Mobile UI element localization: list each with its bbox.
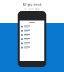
- button[interactable]: [20, 45, 44, 50]
- button[interactable]: [20, 41, 44, 45]
- button[interactable]: [20, 37, 44, 41]
- button[interactable]: [20, 29, 44, 33]
- button[interactable]: [20, 24, 44, 29]
- staticText: All you need: [22, 3, 41, 6]
- staticText: in one app: [24, 7, 40, 11]
- button[interactable]: [20, 33, 44, 37]
